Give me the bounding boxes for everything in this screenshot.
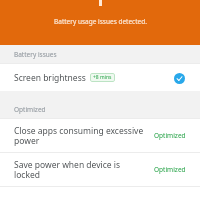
staticText: Battery usage issues detected. <box>54 17 147 26</box>
button[interactable]: Fixed <box>172 71 186 85</box>
staticText: +8 mins <box>93 74 112 81</box>
staticText: Battery issues <box>14 50 57 59</box>
staticText: Optimized <box>154 165 186 174</box>
button[interactable]: Screen brightness <box>0 64 200 91</box>
staticText: Save power when device is locked <box>14 159 148 180</box>
button[interactable]: Save power when device is locked <box>0 153 200 186</box>
staticText: Optimized <box>154 131 186 140</box>
staticText: Close apps consuming excessive power <box>14 125 148 146</box>
staticText: Optimized <box>14 105 46 114</box>
staticText: Screen brightness <box>14 72 86 84</box>
button[interactable]: Close apps consuming excessive power <box>0 119 200 152</box>
